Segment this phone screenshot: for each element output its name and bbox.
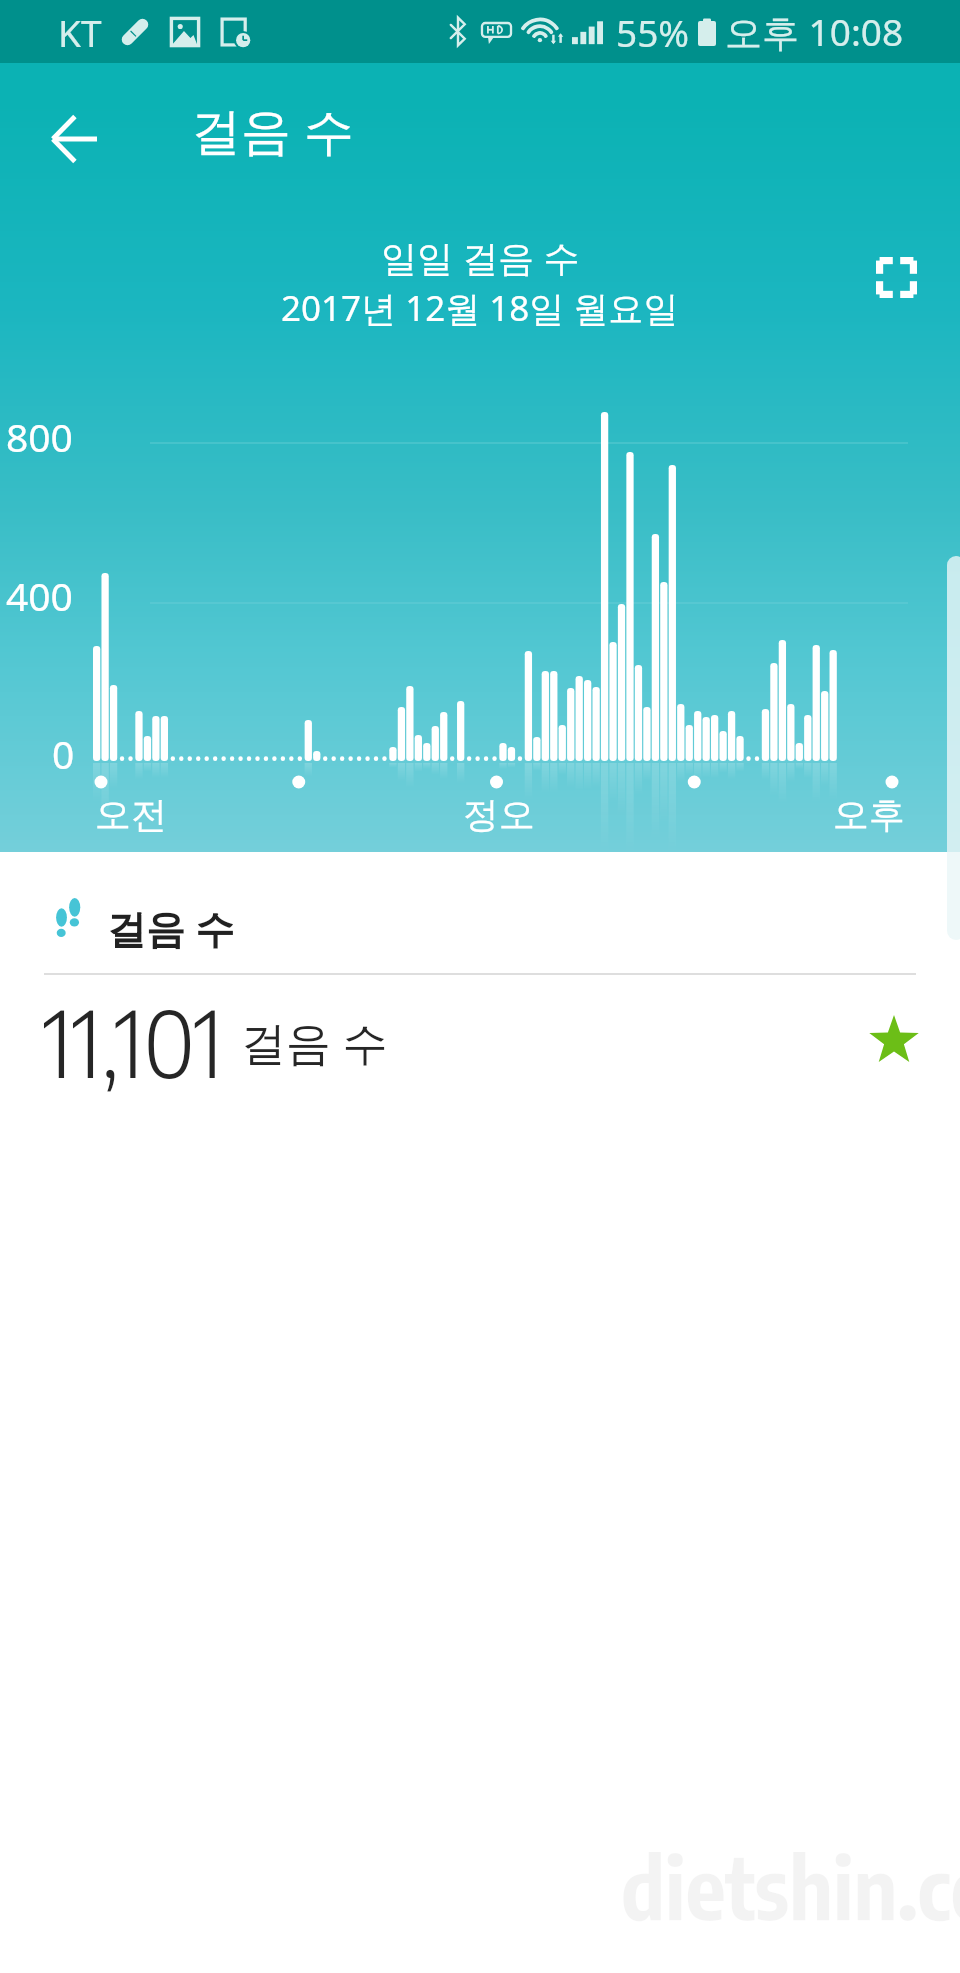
button[interactable]: 걸음 수 <box>0 852 960 973</box>
staticText: 800 <box>6 410 73 463</box>
button[interactable]: 11,101 <box>0 975 960 1107</box>
button[interactable]: Fullscreen <box>862 243 930 311</box>
staticText: 55% <box>616 7 690 57</box>
staticText: 0 <box>52 727 75 780</box>
staticText: 400 <box>6 569 73 622</box>
staticText: 걸음 수 <box>191 96 354 164</box>
staticText: 2017년 12월 18일 월요일 <box>281 284 679 332</box>
button[interactable]: Back <box>30 95 118 183</box>
staticText: 오후 <box>833 792 905 837</box>
staticText: 일일 걸음 수 <box>381 233 580 282</box>
staticText: KT <box>58 7 102 57</box>
staticText: 오전 <box>95 792 167 837</box>
staticText: 걸음 수 <box>241 1011 388 1072</box>
staticText: 11,101 <box>43 985 223 1097</box>
staticText: 오후 10:08 <box>725 6 904 57</box>
staticText: dietshin.com <box>621 1833 960 1938</box>
staticText: 걸음 수 <box>107 901 235 954</box>
staticText: 정오 <box>463 792 535 837</box>
